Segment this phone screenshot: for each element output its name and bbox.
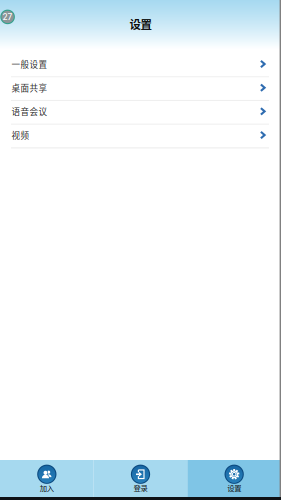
button[interactable]: 登录 (94, 460, 187, 497)
button[interactable]: 加入 (0, 460, 94, 497)
button[interactable]: 通知 27 (0, 10, 15, 24)
staticText: 登录 (133, 483, 147, 493)
button[interactable]: 视频 (0, 125, 281, 148)
button[interactable]: 设置 (187, 460, 281, 497)
button[interactable]: 语音会议 (0, 101, 281, 125)
staticText: 桌面共享 (11, 81, 47, 94)
staticText: 设置 (129, 16, 151, 32)
button[interactable]: 一般设置 (0, 54, 281, 77)
staticText: 视频 (11, 129, 29, 141)
staticText: 语音会议 (11, 105, 47, 118)
staticText: 加入 (40, 483, 54, 493)
button[interactable]: 桌面共享 (0, 77, 281, 101)
staticText: 设置 (227, 483, 241, 493)
staticText: 一般设置 (11, 58, 47, 70)
staticText: 27 (3, 12, 13, 22)
